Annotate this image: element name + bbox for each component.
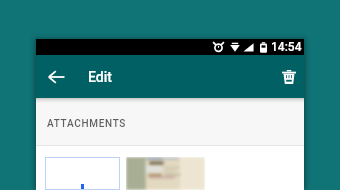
button[interactable]: Back: [43, 60, 69, 94]
button[interactable]: Attachment photo: [126, 157, 205, 190]
button[interactable]: [45, 157, 120, 190]
button[interactable]: Delete: [275, 60, 303, 94]
staticText: ATTACHMENTS: [47, 118, 127, 130]
staticText: Edit: [88, 69, 112, 85]
staticText: 14:54: [271, 40, 302, 54]
